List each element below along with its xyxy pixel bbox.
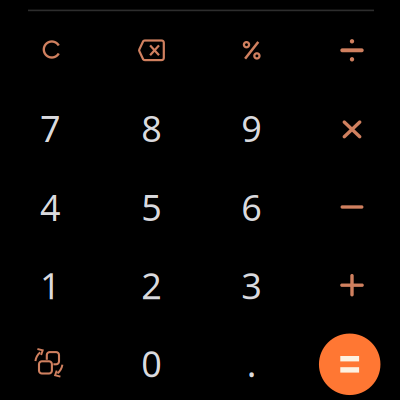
button[interactable]: Swap units: [0, 324, 99, 400]
button[interactable]: Percent: [202, 11, 302, 89]
staticText: 9: [241, 104, 262, 152]
button[interactable]: 3: [202, 246, 302, 324]
button[interactable]: Multiply: [302, 90, 400, 168]
staticText: 5: [141, 183, 162, 231]
button[interactable]: Add: [302, 246, 400, 324]
button[interactable]: 9: [202, 89, 302, 167]
staticText: 1: [40, 261, 61, 309]
button[interactable]: 2: [102, 246, 202, 324]
button[interactable]: 5: [102, 168, 202, 246]
staticText: 4: [40, 183, 61, 231]
button[interactable]: Delete: [102, 11, 202, 89]
button[interactable]: Decimal point: [202, 324, 302, 400]
button[interactable]: Subtract: [302, 168, 400, 246]
button[interactable]: 0: [102, 324, 202, 400]
button[interactable]: 6: [202, 168, 302, 246]
button[interactable]: Clear: [1, 11, 101, 89]
button[interactable]: 4: [1, 168, 101, 246]
staticText: .: [247, 339, 257, 387]
staticText: 3: [241, 261, 262, 309]
staticText: 7: [40, 104, 61, 152]
staticText: 6: [241, 183, 262, 231]
staticText: 8: [141, 104, 162, 152]
staticText: 0: [141, 339, 162, 387]
button[interactable]: 1: [1, 246, 101, 324]
button[interactable]: 8: [102, 89, 202, 167]
staticText: 2: [141, 261, 162, 309]
button[interactable]: Divide: [302, 11, 400, 89]
button[interactable]: Equals: [300, 325, 400, 400]
button[interactable]: 7: [1, 89, 101, 167]
